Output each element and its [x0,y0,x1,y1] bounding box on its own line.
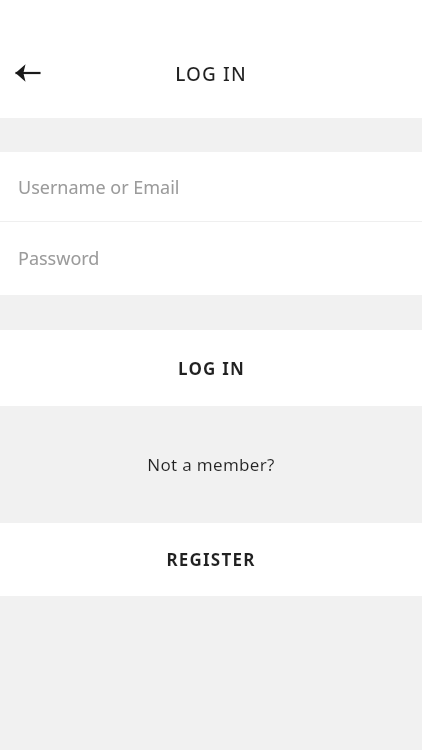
button[interactable]: REGISTER [0,523,422,596]
button[interactable]: LOG IN [0,330,422,406]
staticText: REGISTER [166,548,256,571]
staticText: LOG IN [178,357,245,380]
staticText: LOG IN [175,61,247,87]
staticText: Not a member? [147,453,275,476]
button[interactable]: Password [0,222,422,295]
staticText: Password [18,246,100,271]
button[interactable]: Back [6,51,50,95]
staticText: Username or Email [18,175,180,200]
button[interactable]: Username or Email [0,152,422,222]
